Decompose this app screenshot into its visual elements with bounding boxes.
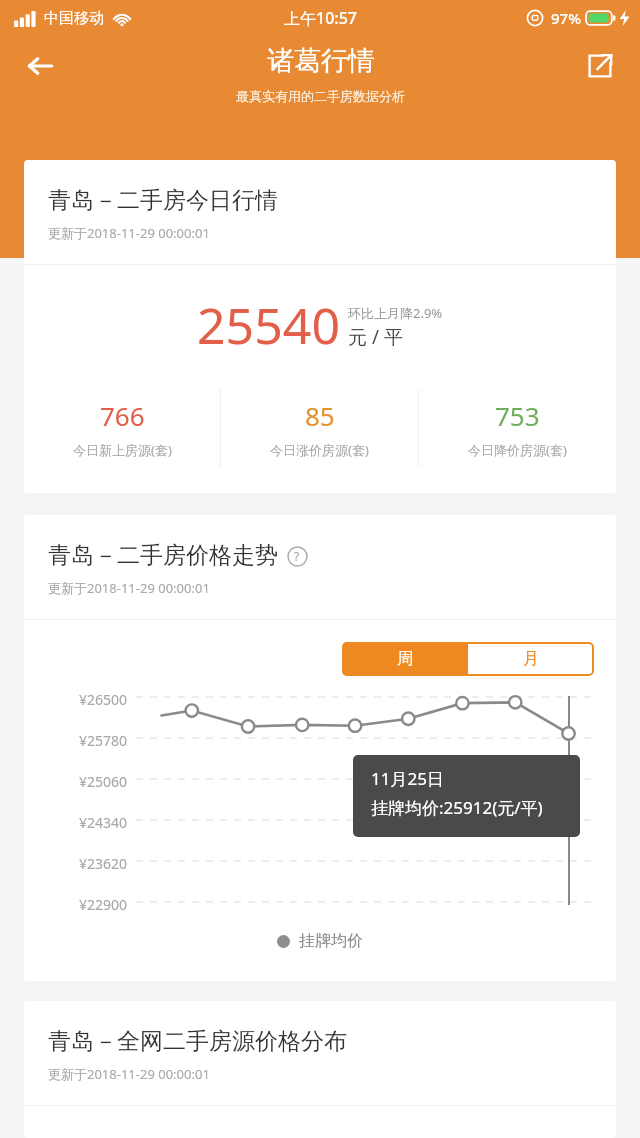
button[interactable]: 月 bbox=[468, 642, 594, 676]
button[interactable]: 85 bbox=[221, 385, 418, 471]
button[interactable]: Share bbox=[574, 40, 626, 92]
staticText: ¥22900 bbox=[79, 895, 128, 914]
staticText: 周 bbox=[397, 649, 413, 669]
staticText: 最真实有用的二手房数据分析 bbox=[236, 88, 405, 104]
staticText: 青岛－全网二手房源价格分布 bbox=[48, 1027, 347, 1056]
staticText: 今日涨价房源(套) bbox=[270, 441, 369, 459]
staticText: ? bbox=[294, 548, 300, 564]
staticText: 97% bbox=[551, 8, 581, 28]
staticText: 今日降价房源(套) bbox=[468, 441, 567, 459]
staticText: 更新于2018-11-29 00:00:01 bbox=[48, 1065, 210, 1083]
staticText: 11月25日 bbox=[371, 767, 444, 790]
staticText: ¥23620 bbox=[79, 854, 128, 873]
staticText: 更新于2018-11-29 00:00:01 bbox=[48, 579, 210, 597]
staticText: ¥26500 bbox=[79, 690, 128, 709]
staticText: 青岛－二手房今日行情 bbox=[48, 186, 278, 215]
staticText: 今日新上房源(套) bbox=[73, 441, 172, 459]
staticText: 月 bbox=[523, 649, 539, 669]
staticText: 挂牌均价:25912(元/平) bbox=[371, 796, 543, 819]
staticText: ¥25780 bbox=[79, 731, 128, 750]
staticText: 中国移动 bbox=[44, 9, 104, 28]
staticText: 上午10:57 bbox=[284, 7, 357, 29]
button[interactable]: 周 bbox=[342, 642, 468, 676]
staticText: 环比上月降2.9% bbox=[348, 304, 443, 322]
staticText: 753 bbox=[495, 398, 540, 433]
button[interactable]: 753 bbox=[419, 385, 616, 471]
staticText: 25540 bbox=[197, 291, 340, 359]
staticText: ¥25060 bbox=[79, 772, 128, 791]
button[interactable]: 766 bbox=[24, 385, 220, 471]
staticText: 766 bbox=[100, 398, 145, 433]
staticText: 85 bbox=[305, 398, 335, 433]
staticText: ¥24340 bbox=[79, 813, 128, 832]
staticText: 元 / 平 bbox=[348, 324, 403, 350]
staticText: 诸葛行情 bbox=[267, 44, 375, 78]
staticText: 青岛－二手房价格走势 bbox=[48, 541, 278, 570]
button[interactable]: Help bbox=[285, 544, 309, 568]
staticText: 更新于2018-11-29 00:00:01 bbox=[48, 224, 210, 242]
button[interactable]: Back bbox=[14, 40, 66, 92]
staticText: 挂牌均价 bbox=[299, 931, 363, 951]
